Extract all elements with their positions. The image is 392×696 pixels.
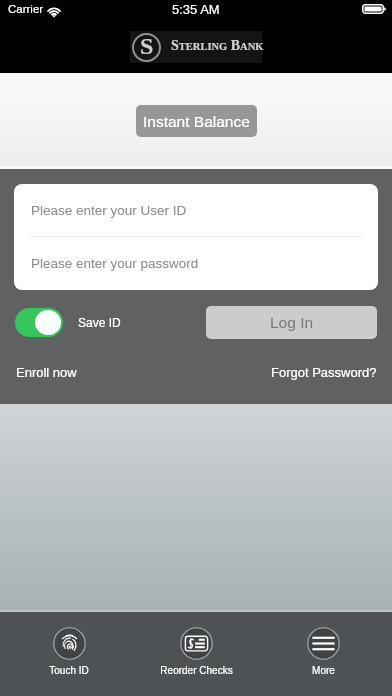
button[interactable]: Reorder Checks xyxy=(133,612,260,676)
button[interactable]: Enroll now xyxy=(16,365,77,380)
staticText: Save ID xyxy=(78,316,121,329)
button[interactable]: Save ID xyxy=(15,308,63,337)
button[interactable]: Log In xyxy=(206,306,377,339)
button[interactable]: Touch ID xyxy=(5,612,133,676)
staticText: Enroll now xyxy=(16,365,77,380)
button[interactable]: Instant Balance xyxy=(136,105,257,137)
button[interactable]: Please enter your password xyxy=(14,237,378,290)
staticText: 5:35 AM xyxy=(172,2,220,17)
staticText: Forgot Password? xyxy=(271,365,377,380)
staticText: Please enter your User ID xyxy=(31,203,187,218)
staticText: Please enter your password xyxy=(31,256,199,271)
button[interactable]: Forgot Password? xyxy=(271,365,377,380)
staticText: Log In xyxy=(270,314,314,331)
staticText: STERLING BANK xyxy=(171,38,264,54)
staticText: Carrier xyxy=(8,3,44,16)
button[interactable]: Please enter your User ID xyxy=(14,184,378,236)
staticText: Touch ID xyxy=(49,665,89,676)
staticText: S xyxy=(140,33,154,60)
button[interactable]: More xyxy=(260,612,387,676)
staticText: Instant Balance xyxy=(143,113,250,130)
staticText: Reorder Checks xyxy=(160,665,233,676)
staticText: More xyxy=(312,665,335,676)
